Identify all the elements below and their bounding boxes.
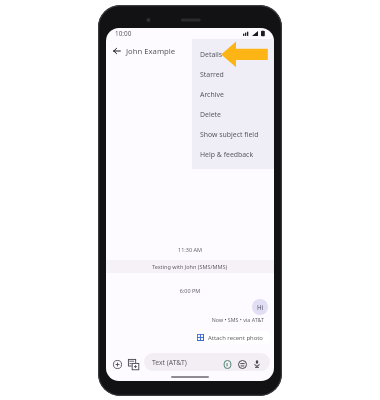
button[interactable]: Emoji [236,358,248,370]
staticText: 11:30 AM [106,246,274,253]
button[interactable]: Gallery [126,357,141,372]
staticText: Hi [257,303,264,312]
staticText: 10:00 [115,29,132,38]
button[interactable]: Help & feedback [192,144,274,164]
staticText: Delete [200,110,221,119]
staticText: John Example [126,46,176,56]
button[interactable]: Back [109,43,125,59]
button[interactable]: Show subject field [192,124,274,144]
staticText: 6:00 PM [106,287,274,294]
staticText: Show subject field [200,130,259,139]
button[interactable]: Voice input [251,358,263,370]
staticText: Archive [200,90,224,99]
button[interactable]: Archive [192,84,274,104]
staticText: Starred [200,70,224,79]
staticText: Details [200,50,223,59]
button[interactable]: Delete [192,104,274,124]
button[interactable]: Starred [192,64,274,84]
button[interactable]: Hi [252,299,268,315]
staticText: Text (AT&T) [152,358,187,367]
staticText: Attach recent photo [208,334,263,342]
button[interactable]: Stickers [221,358,233,370]
staticText: Help & feedback [200,150,254,159]
button[interactable]: Details [192,44,274,64]
staticText: Now • SMS • via AT&T [106,316,264,323]
staticText: Texting with John (SMS/MMS) [152,263,228,270]
button[interactable]: Text (AT&T) [144,353,270,371]
button[interactable]: Add attachment [110,357,125,372]
button[interactable]: Attach recent photo [194,331,271,344]
